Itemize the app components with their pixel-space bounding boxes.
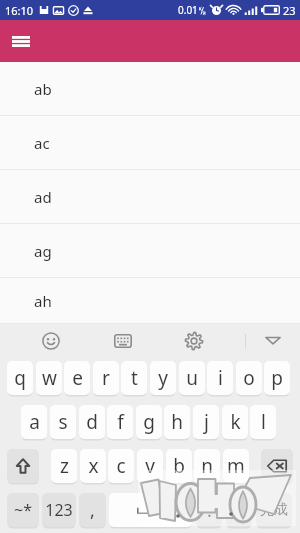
button[interactable]: . (196, 493, 222, 527)
staticText: ah (34, 291, 52, 311)
staticText: 16:10 (5, 3, 34, 18)
staticText: 23 (283, 3, 296, 18)
staticText: z (60, 453, 69, 479)
button[interactable]: , (79, 493, 106, 527)
button[interactable]: u (179, 361, 205, 395)
staticText: s (58, 409, 68, 435)
button[interactable]: h (164, 405, 190, 439)
button[interactable]: Open navigation menu (5, 25, 37, 57)
staticText: t (131, 365, 138, 391)
button[interactable]: d (79, 405, 105, 439)
button[interactable]: ac (0, 116, 300, 170)
staticText: 0.01 (178, 3, 198, 17)
button[interactable]: ~* (7, 493, 39, 527)
button[interactable]: s (50, 405, 76, 439)
button[interactable]: Emoji (34, 324, 68, 358)
staticText: , (90, 498, 95, 523)
button[interactable]: m (223, 449, 249, 483)
staticText: q (14, 365, 26, 391)
button[interactable]: Settings (177, 324, 211, 358)
button[interactable]: f (107, 405, 133, 439)
staticText: h (171, 409, 183, 435)
button[interactable]: 完成 (256, 493, 292, 527)
staticText: ad (34, 187, 52, 207)
button[interactable]: y (150, 361, 176, 395)
staticText: d (86, 409, 98, 435)
staticText: b (173, 453, 185, 479)
button[interactable]: ad (0, 170, 300, 224)
button[interactable]: ah (0, 278, 300, 324)
staticText: . (207, 498, 212, 523)
button[interactable]: 英 (226, 493, 252, 527)
button[interactable]: z (51, 449, 77, 483)
button[interactable]: 123 (42, 493, 76, 527)
staticText: o (243, 365, 255, 391)
button[interactable]: q (7, 361, 33, 395)
button[interactable]: i (207, 361, 233, 395)
staticText: x (88, 453, 99, 479)
staticText: m (227, 453, 245, 479)
button[interactable]: n (194, 449, 220, 483)
staticText: w (42, 365, 57, 391)
button[interactable]: e (64, 361, 90, 395)
staticText: i (218, 365, 223, 391)
button[interactable]: v (137, 449, 163, 483)
button[interactable]: k (222, 405, 248, 439)
button[interactable]: p (264, 361, 290, 395)
button[interactable]: ag (0, 224, 300, 278)
staticText: ag (34, 241, 52, 261)
button[interactable]: x (80, 449, 106, 483)
button[interactable]: Space (109, 493, 192, 527)
staticText: ac (34, 133, 50, 153)
button[interactable]: Hide keyboard (256, 324, 290, 358)
staticText: n (201, 453, 213, 479)
staticText: r (102, 365, 110, 391)
button[interactable]: c (108, 449, 134, 483)
button[interactable]: Shift (7, 449, 39, 483)
staticText: e (72, 365, 83, 391)
staticText: j (204, 409, 209, 435)
button[interactable]: w (36, 361, 62, 395)
button[interactable]: ab (0, 62, 300, 116)
button[interactable]: o (236, 361, 262, 395)
staticText: p (271, 365, 283, 391)
staticText: 123 (45, 499, 73, 521)
button[interactable]: j (193, 405, 219, 439)
staticText: g (143, 409, 155, 435)
staticText: l (261, 409, 266, 435)
staticText: 完成 (260, 501, 288, 519)
button[interactable]: l (250, 405, 276, 439)
staticText: v (145, 453, 155, 479)
button[interactable]: r (93, 361, 119, 395)
button[interactable]: a (21, 405, 47, 439)
staticText: f (117, 409, 124, 435)
staticText: a (29, 409, 40, 435)
staticText: c (116, 453, 126, 479)
staticText: k (230, 409, 241, 435)
button[interactable]: Backspace (261, 449, 293, 483)
staticText: y (158, 365, 168, 391)
button[interactable]: g (136, 405, 162, 439)
staticText: ~* (14, 499, 32, 521)
button[interactable]: Switch keyboard (106, 324, 140, 358)
staticText: 英 (232, 501, 247, 520)
button[interactable]: b (166, 449, 192, 483)
staticText: ab (34, 79, 52, 99)
button[interactable]: t (121, 361, 147, 395)
staticText: u (186, 365, 198, 391)
